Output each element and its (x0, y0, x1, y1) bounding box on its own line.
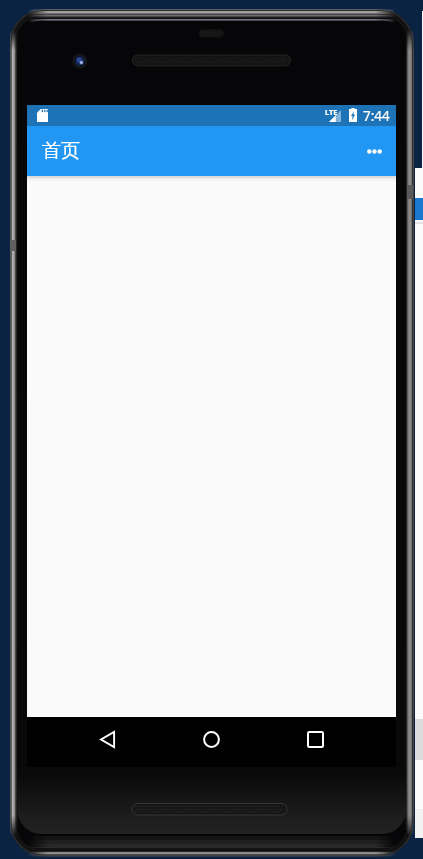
button[interactable]: Home (187, 715, 235, 763)
button[interactable]: Back (83, 715, 131, 763)
staticText: LTE (325, 107, 338, 117)
button[interactable]: More options (350, 127, 398, 175)
staticText: 7:44 (363, 107, 390, 125)
button[interactable]: Recents (291, 715, 339, 763)
staticText: 首页 (42, 139, 80, 163)
